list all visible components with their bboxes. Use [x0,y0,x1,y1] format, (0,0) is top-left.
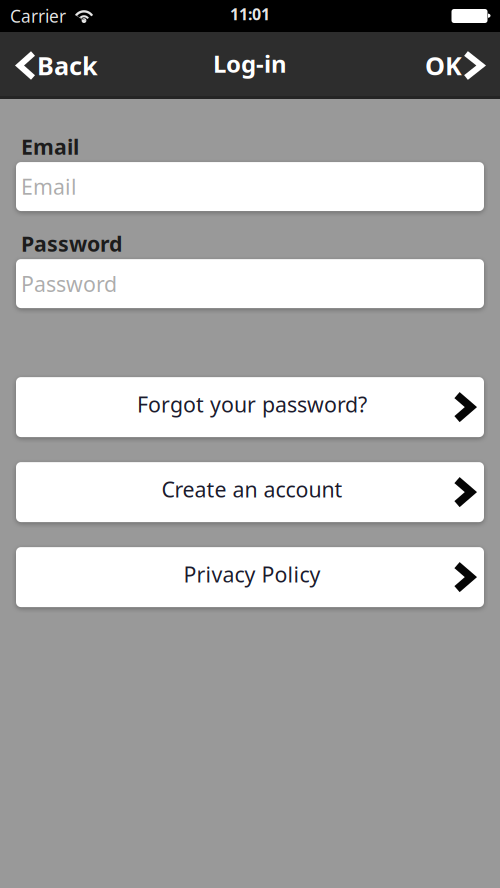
staticText: Back [37,48,98,83]
staticText: 11:01 [230,3,270,25]
staticText: Privacy Policy [183,560,320,589]
staticText: Forgot your password? [137,390,367,419]
staticText: Password [21,229,122,258]
staticText: Password [21,269,117,298]
button[interactable]: Create an account [16,462,484,522]
staticText: OK [425,48,462,83]
button[interactable]: Back [0,32,110,99]
button[interactable]: OK [413,32,500,99]
staticText: Email [21,132,79,161]
staticText: Carrier [10,4,66,28]
button[interactable]: Privacy Policy [16,547,484,607]
button[interactable]: Password [16,259,484,308]
button[interactable]: Email [16,162,484,211]
button[interactable]: Forgot your password? [16,377,484,437]
staticText: Log-in [213,47,287,80]
staticText: Email [21,172,77,201]
staticText: Create an account [161,475,342,504]
